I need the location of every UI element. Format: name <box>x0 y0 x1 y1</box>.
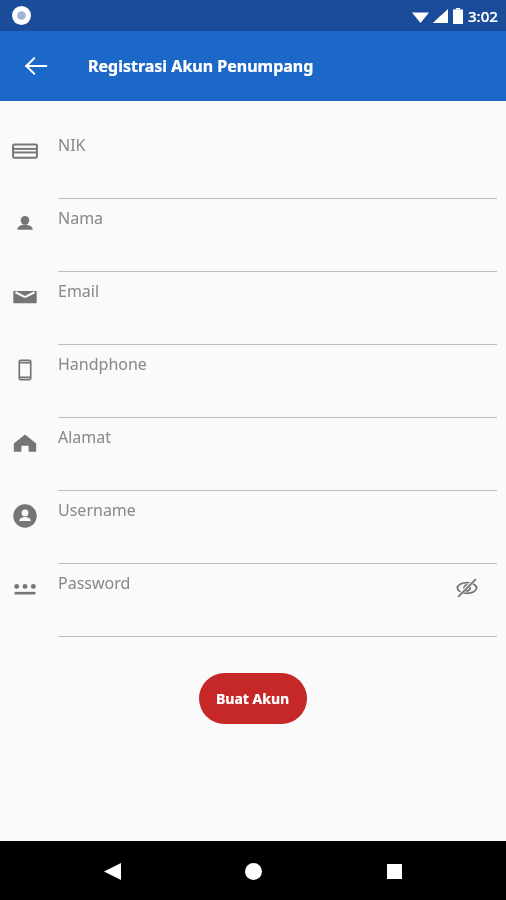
button[interactable]: Recent apps <box>370 847 418 895</box>
button[interactable]: Back <box>88 847 136 895</box>
button[interactable]: NIK <box>0 133 506 206</box>
button[interactable]: Buat Akun <box>199 673 307 724</box>
staticText: 3:02 <box>468 6 498 26</box>
staticText: Password <box>58 572 131 594</box>
button[interactable]: Home <box>229 847 277 895</box>
button[interactable]: Show password <box>452 573 482 603</box>
staticText: Email <box>58 280 100 302</box>
staticText: Username <box>58 499 136 521</box>
staticText: NIK <box>58 134 86 156</box>
button[interactable]: Username <box>0 498 506 571</box>
button[interactable]: Alamat <box>0 425 506 498</box>
staticText: Handphone <box>58 353 147 375</box>
button[interactable]: Back <box>12 42 60 90</box>
staticText: Nama <box>58 207 104 229</box>
staticText: Alamat <box>58 426 112 448</box>
button[interactable]: Password <box>0 571 506 644</box>
button[interactable]: Email <box>0 279 506 352</box>
staticText: Buat Akun <box>216 689 290 708</box>
staticText: Registrasi Akun Penumpang <box>88 55 314 77</box>
button[interactable]: Nama <box>0 206 506 279</box>
button[interactable]: Handphone <box>0 352 506 425</box>
